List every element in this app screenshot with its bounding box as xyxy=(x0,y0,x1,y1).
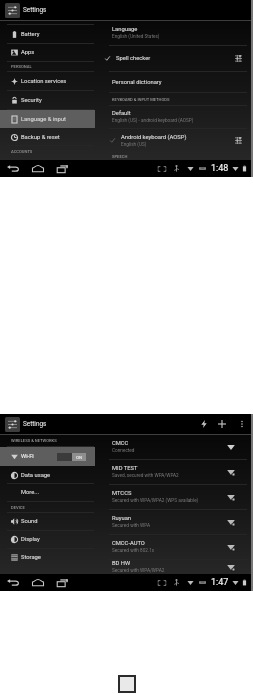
staticText: Security xyxy=(21,97,42,104)
staticText: English (United States) xyxy=(112,34,160,40)
button[interactable]: More... xyxy=(0,484,95,501)
button[interactable]: Home xyxy=(25,574,50,591)
button[interactable]: Language xyxy=(95,21,253,45)
staticText: Language xyxy=(112,26,138,33)
staticText: Apps xyxy=(21,49,35,56)
button[interactable]: Back xyxy=(0,574,25,591)
staticText: DEVICE xyxy=(11,505,25,510)
staticText: Secured with WPA/WPA2 xyxy=(112,568,165,573)
staticText: ACCOUNTS xyxy=(11,149,33,154)
staticText: CMCC-AUTO xyxy=(112,540,145,547)
button[interactable]: Display xyxy=(0,531,95,548)
staticText: ON xyxy=(76,455,83,460)
button[interactable]: CMCC-AUTO xyxy=(95,535,253,559)
button[interactable]: Sound xyxy=(0,513,95,530)
button[interactable]: Location services xyxy=(0,72,95,90)
button[interactable]: MTCCS xyxy=(95,485,253,509)
staticText: Connected xyxy=(112,448,135,454)
staticText: BD HW xyxy=(112,560,131,567)
button[interactable]: Settings xyxy=(0,414,53,434)
staticText: Data usage xyxy=(21,472,51,479)
button[interactable]: Personal dictionary xyxy=(95,72,253,92)
staticText: English (US) xyxy=(121,142,147,148)
staticText: Spell checker xyxy=(116,55,151,62)
staticText: Android keyboard (AOSP) xyxy=(121,134,187,141)
button[interactable]: CMCC xyxy=(95,435,253,459)
button[interactable]: Default xyxy=(95,106,253,128)
staticText: MID TEST xyxy=(112,465,138,472)
button[interactable]: Data usage xyxy=(0,467,95,483)
staticText: Backup & reset xyxy=(21,134,60,141)
button[interactable]: Backup & reset xyxy=(0,129,95,145)
staticText: Location services xyxy=(21,78,67,85)
staticText: SPEECH xyxy=(112,154,128,159)
button[interactable]: Recent apps xyxy=(50,574,75,591)
button[interactable]: Spell checker xyxy=(95,46,253,71)
staticText: Saved, secured with WPA/WPA2 xyxy=(112,473,179,479)
staticText: Language & input xyxy=(21,116,66,123)
button[interactable]: Wi-Fi xyxy=(0,447,95,466)
button[interactable]: Android keyboard (AOSP) xyxy=(95,129,253,152)
staticText: MTCCS xyxy=(112,490,132,497)
button[interactable]: Add network xyxy=(212,414,232,434)
staticText: Settings xyxy=(23,6,47,14)
staticText: Wi-Fi xyxy=(21,453,34,460)
staticText: Battery xyxy=(21,31,40,38)
staticText: WIRELESS & NETWORKS xyxy=(11,438,57,443)
staticText: KEYBOARD & INPUT METHODS xyxy=(112,97,170,102)
staticText: Default xyxy=(112,110,131,117)
button[interactable]: Security xyxy=(0,91,95,109)
button[interactable]: Settings xyxy=(0,0,53,20)
button[interactable]: Storage xyxy=(0,549,95,566)
staticText: Display xyxy=(21,536,40,543)
staticText: More... xyxy=(21,489,39,496)
button[interactable]: Language & input xyxy=(0,110,95,128)
staticText: Ruyuan xyxy=(112,515,132,522)
staticText: Personal dictionary xyxy=(112,79,162,86)
button[interactable]: Battery xyxy=(0,25,95,43)
staticText: 1:47 xyxy=(211,577,229,588)
staticText: CMCC xyxy=(112,440,129,447)
button[interactable]: BD HW xyxy=(95,560,253,573)
button[interactable]: Ruyuan xyxy=(95,510,253,534)
button[interactable]: Scan for networks xyxy=(195,414,212,434)
staticText: Sound xyxy=(21,518,38,525)
button[interactable]: Recent apps xyxy=(50,160,75,177)
button[interactable]: Apps xyxy=(0,44,95,61)
staticText: Storage xyxy=(21,554,41,561)
staticText: Secured with WPA xyxy=(112,523,150,529)
button[interactable]: Home xyxy=(25,160,50,177)
staticText: Settings xyxy=(23,420,47,428)
button[interactable]: Back xyxy=(0,160,25,177)
staticText: Secured with 802.1x xyxy=(112,548,155,554)
button[interactable]: More options xyxy=(232,414,251,434)
staticText: Secured with WPA/WPA2 (WPS available) xyxy=(112,498,199,504)
staticText: 1:48 xyxy=(211,163,229,174)
button[interactable]: MID TEST xyxy=(95,460,253,484)
staticText: PERSONAL xyxy=(11,64,32,69)
staticText: English (US) - android keyboard (AOSP) xyxy=(112,118,194,124)
